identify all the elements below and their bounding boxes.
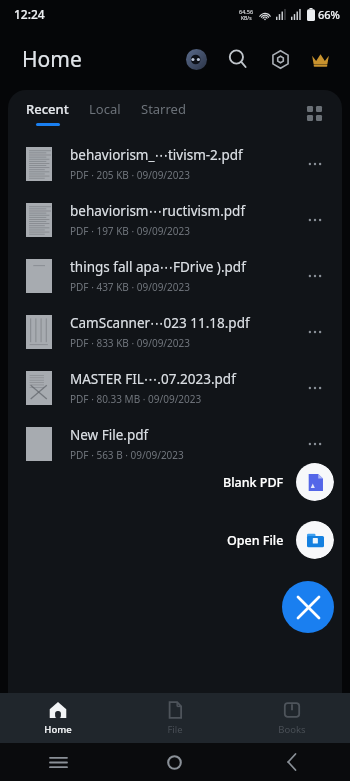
button[interactable]: Grid view bbox=[298, 97, 330, 129]
staticText: New File.pdf bbox=[70, 426, 149, 444]
button[interactable]: Settings bbox=[262, 41, 298, 77]
staticText: behaviorism_⋯tivism-2.pdf bbox=[70, 146, 243, 164]
button[interactable]: Recent bbox=[22, 97, 73, 129]
staticText: PDF · 205 KB · 09/09/2023 bbox=[70, 168, 190, 182]
button[interactable]: Back bbox=[233, 743, 350, 781]
staticText: Local bbox=[89, 100, 121, 118]
staticText: PDF · 80.33 MB · 09/09/2023 bbox=[70, 392, 202, 406]
button[interactable]: Assistant bbox=[178, 41, 214, 77]
button[interactable]: Starred bbox=[137, 97, 190, 129]
button[interactable]: More options bbox=[298, 427, 332, 461]
staticText: Home bbox=[44, 723, 72, 736]
staticText: Blank PDF bbox=[223, 474, 284, 491]
staticText: PDF · 437 KB · 09/09/2023 bbox=[70, 280, 190, 294]
staticText: MASTER FIL⋯.07.2023.pdf bbox=[70, 370, 236, 388]
button[interactable]: More options bbox=[298, 147, 332, 181]
button[interactable]: behaviorism_⋯tivism-2.pdf bbox=[8, 136, 342, 192]
staticText: Books bbox=[278, 723, 306, 736]
button[interactable]: New File.pdf bbox=[8, 416, 342, 472]
button[interactable]: Home bbox=[116, 743, 233, 781]
staticText: 64.56 bbox=[239, 8, 254, 15]
button[interactable]: Blank PDF bbox=[223, 463, 334, 501]
button[interactable]: More options bbox=[298, 203, 332, 237]
staticText: File bbox=[167, 723, 183, 736]
staticText: Open File bbox=[227, 532, 284, 549]
staticText: things fall apa⋯FDrive ).pdf bbox=[70, 258, 246, 276]
button[interactable]: More options bbox=[298, 259, 332, 293]
button[interactable]: More options bbox=[298, 315, 332, 349]
button[interactable]: Close menu bbox=[282, 581, 334, 633]
staticText: PDF · 563 B · 09/09/2023 bbox=[70, 448, 184, 462]
button[interactable]: CamScanner⋯023 11.18.pdf bbox=[8, 304, 342, 360]
staticText: CamScanner⋯023 11.18.pdf bbox=[70, 314, 250, 332]
button[interactable]: Recent apps bbox=[0, 743, 116, 781]
staticText: 66% bbox=[318, 7, 340, 22]
button[interactable]: Search bbox=[220, 41, 256, 77]
button[interactable]: File bbox=[116, 693, 233, 743]
button[interactable]: Books bbox=[233, 693, 350, 743]
staticText: Starred bbox=[141, 100, 186, 118]
button[interactable]: things fall apa⋯FDrive ).pdf bbox=[8, 248, 342, 304]
button[interactable]: Home bbox=[0, 693, 116, 743]
staticText: Home bbox=[22, 45, 82, 74]
staticText: Recent bbox=[26, 100, 69, 118]
button[interactable]: behaviorism⋯ructivism.pdf bbox=[8, 192, 342, 248]
staticText: PDF · 833 KB · 09/09/2023 bbox=[70, 336, 190, 350]
button[interactable]: MASTER FIL⋯.07.2023.pdf bbox=[8, 360, 342, 416]
staticText: PDF · 197 KB · 09/09/2023 bbox=[70, 224, 190, 238]
staticText: 12:24 bbox=[14, 6, 45, 22]
staticText: behaviorism⋯ructivism.pdf bbox=[70, 202, 246, 220]
staticText: KB/s bbox=[241, 15, 252, 22]
button[interactable]: Open File bbox=[227, 521, 334, 559]
button[interactable]: More options bbox=[298, 371, 332, 405]
button[interactable]: Premium bbox=[302, 41, 338, 77]
button[interactable]: Local bbox=[85, 97, 125, 129]
